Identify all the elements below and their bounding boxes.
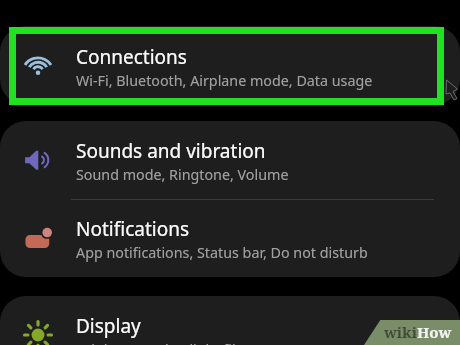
button[interactable]: Sounds and vibration	[0, 121, 460, 199]
button[interactable]: Connections	[0, 26, 460, 105]
staticText: Notifications	[76, 216, 190, 242]
staticText: Sounds and vibration	[76, 138, 266, 164]
staticText: App notifications, Status bar, Do not di…	[76, 243, 368, 262]
button[interactable]: Notifications	[0, 199, 460, 277]
staticText: Wi-Fi, Bluetooth, Airplane mode, Data us…	[76, 71, 373, 90]
staticText: Brightness, Blue light filter, Home scre…	[76, 340, 349, 345]
staticText: Display	[76, 313, 141, 339]
staticText: wiki	[384, 322, 417, 342]
staticText: How	[417, 322, 452, 342]
staticText: Connections	[76, 44, 187, 70]
staticText: Sound mode, Ringtone, Volume	[76, 165, 289, 184]
button[interactable]: Display	[0, 296, 460, 345]
